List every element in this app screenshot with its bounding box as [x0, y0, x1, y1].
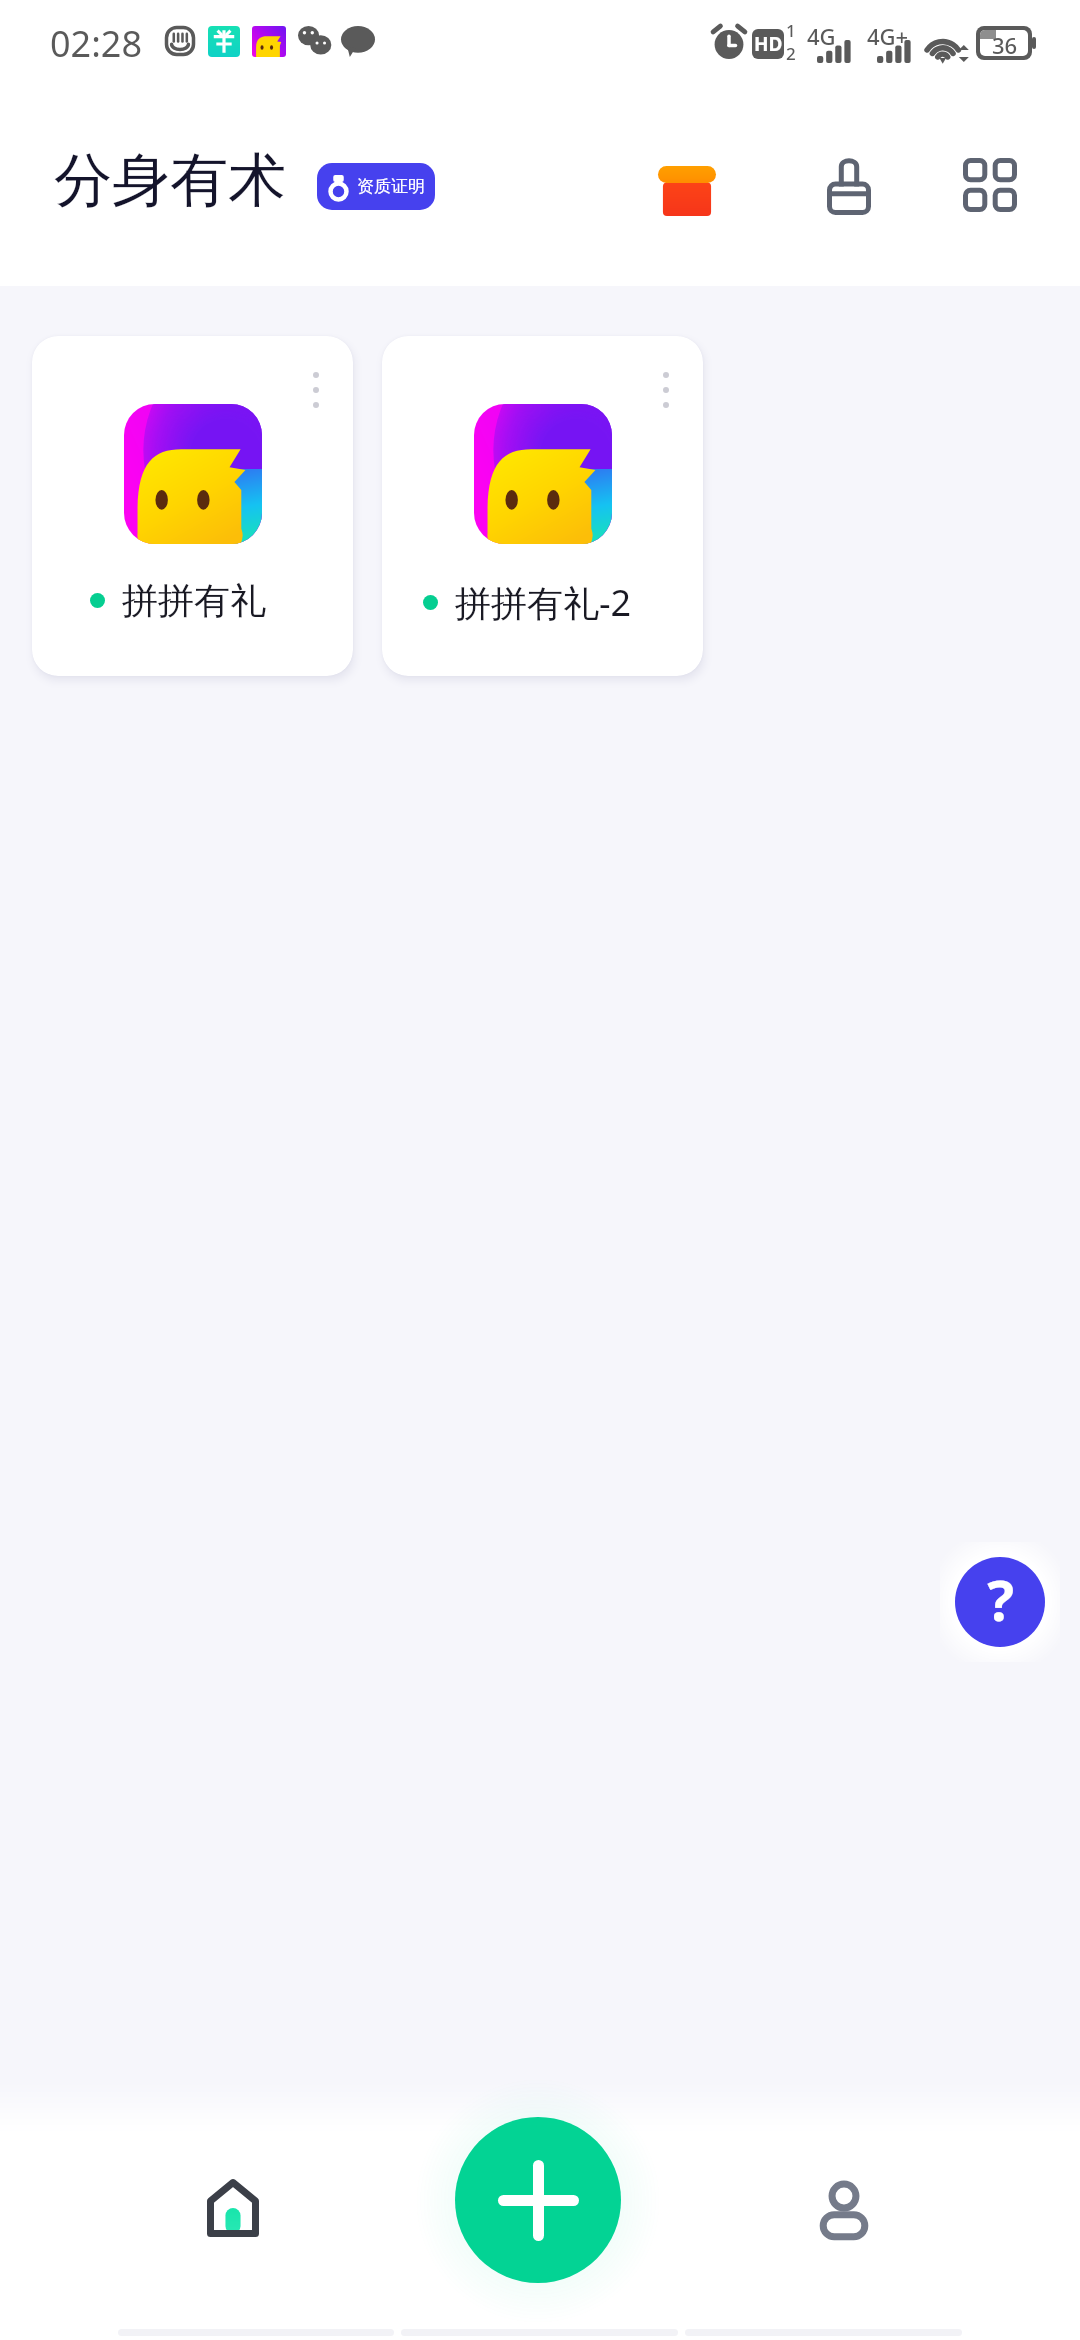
staticText: 拼拼有礼: [122, 578, 266, 623]
staticText: 分身有术: [54, 144, 286, 217]
button[interactable]: Grid view: [946, 141, 1034, 229]
staticText: 2: [786, 42, 796, 65]
button[interactable]: Profile: [774, 2140, 914, 2280]
button[interactable]: More options: [32, 336, 353, 676]
button[interactable]: 资质证明: [317, 163, 435, 210]
button[interactable]: Gift box: [643, 147, 731, 235]
button[interactable]: Home: [163, 2138, 303, 2278]
button[interactable]: Add: [455, 2117, 621, 2283]
staticText: 1: [786, 19, 796, 42]
button[interactable]: Cleaner: [805, 142, 893, 230]
staticText: 4G+: [867, 21, 909, 51]
staticText: 02:28: [50, 19, 143, 68]
staticText: 36: [992, 30, 1018, 56]
button[interactable]: More options: [659, 368, 673, 412]
button[interactable]: More options: [382, 336, 703, 676]
button[interactable]: Help: [955, 1557, 1045, 1647]
staticText: HD: [754, 31, 783, 57]
staticText: 拼拼有礼-2: [455, 578, 632, 627]
staticText: 资质证明: [357, 176, 425, 197]
staticText: 4G: [807, 21, 836, 51]
button[interactable]: More options: [309, 368, 323, 412]
staticText: ?: [987, 1561, 1014, 1637]
